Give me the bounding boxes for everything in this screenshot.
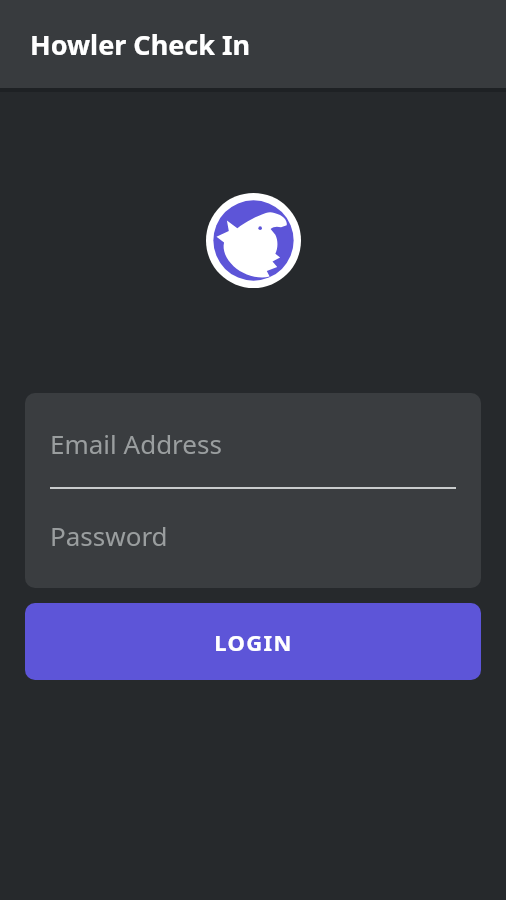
staticText: Email Address <box>50 426 222 461</box>
staticText: Howler Check In <box>30 26 251 63</box>
button[interactable]: Email Address <box>25 419 481 467</box>
button[interactable]: LOGIN <box>25 603 481 680</box>
button[interactable]: Password <box>25 511 481 559</box>
staticText: LOGIN <box>214 627 293 657</box>
other: Howler logo <box>206 193 301 288</box>
staticText: Password <box>50 518 168 553</box>
